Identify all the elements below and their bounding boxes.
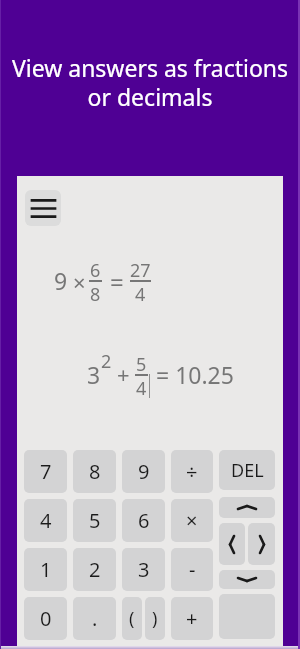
button[interactable]: Move cursor right <box>248 523 275 565</box>
staticText: 8 <box>90 282 101 307</box>
button[interactable]: 4 <box>24 499 67 542</box>
staticText: 3 <box>138 556 150 583</box>
staticText: 2 <box>89 556 101 583</box>
staticText: . <box>92 605 98 632</box>
staticText: DEL <box>231 458 264 483</box>
button[interactable]: . <box>73 597 116 640</box>
button[interactable]: 7 <box>24 450 67 493</box>
staticText: 5 <box>89 507 101 534</box>
staticText: 4 <box>40 507 52 534</box>
staticText: 27 <box>130 258 151 283</box>
staticText: ÷ <box>186 458 198 485</box>
button[interactable]: Scroll down <box>219 570 275 589</box>
staticText: = <box>110 265 124 298</box>
staticText: 8 <box>89 458 101 485</box>
button[interactable]: 5 <box>73 499 116 542</box>
staticText: 5 <box>136 352 147 377</box>
button[interactable]: Scroll up <box>219 497 275 518</box>
button[interactable]: Move cursor left <box>219 523 245 565</box>
staticText: 7 <box>40 458 52 485</box>
staticText: × <box>186 507 198 534</box>
staticText: 9 <box>54 265 68 296</box>
staticText: 2 <box>101 349 112 374</box>
button[interactable]: 9 <box>122 450 165 493</box>
button[interactable]: ( <box>122 597 142 640</box>
staticText: 3 <box>87 359 101 390</box>
button[interactable]: 0 <box>24 597 67 640</box>
staticText: = 10.25 <box>156 359 234 390</box>
staticText: ( <box>129 606 135 631</box>
button[interactable]: 6 <box>122 499 165 542</box>
button[interactable]: 3 <box>122 548 165 591</box>
staticText: View answers as fractions or decimals <box>0 52 300 113</box>
button[interactable]: Menu <box>25 190 61 226</box>
staticText: 9 <box>138 458 150 485</box>
button[interactable]: ) <box>145 597 165 640</box>
staticText: 1 <box>40 556 52 583</box>
staticText: 4 <box>135 282 146 307</box>
button[interactable]: × <box>171 499 213 542</box>
button[interactable]: DEL <box>219 450 275 490</box>
button[interactable]: ÷ <box>171 450 213 493</box>
staticText: 4 <box>136 376 147 401</box>
button[interactable]: + <box>171 597 213 640</box>
staticText: 6 <box>90 258 101 283</box>
staticText: - <box>189 556 196 583</box>
staticText: 6 <box>138 507 150 534</box>
staticText: 0 <box>40 605 52 632</box>
staticText: + <box>186 605 198 632</box>
button[interactable]: 1 <box>24 548 67 591</box>
staticText: ) <box>152 606 158 631</box>
button[interactable]: 2 <box>73 548 116 591</box>
button[interactable]: 8 <box>73 450 116 493</box>
staticText: + <box>117 359 130 389</box>
button[interactable]: - <box>171 548 213 591</box>
staticText: × <box>73 267 86 297</box>
